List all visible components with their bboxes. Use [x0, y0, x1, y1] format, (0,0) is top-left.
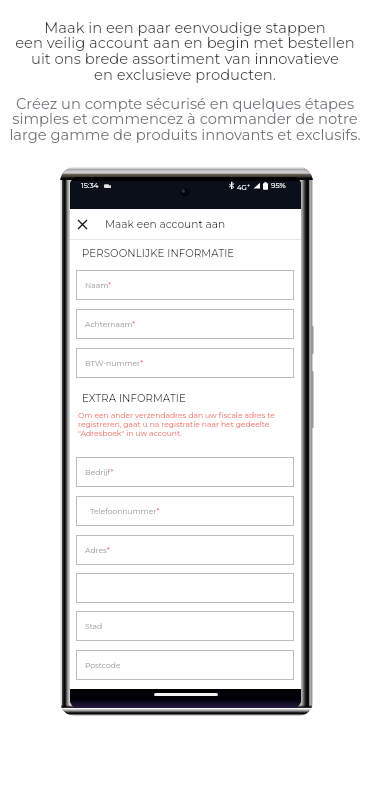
staticText: Créez un compte sécurisé en quelques éta…	[9, 95, 361, 144]
staticText: 15:34	[81, 181, 99, 190]
staticText: Naam*	[85, 281, 111, 290]
button[interactable]: Stad	[76, 611, 294, 641]
staticText: Telefoonnummer*	[90, 507, 160, 516]
staticText: EXTRA INFORMATIE	[82, 392, 186, 404]
staticText: Bedrijf*	[85, 468, 114, 477]
staticText: Maak een account aan	[105, 218, 226, 231]
button[interactable]: Achternaam*	[76, 309, 294, 339]
staticText: BTW-nummer*	[85, 359, 144, 368]
staticText: 95%	[271, 181, 286, 190]
staticText: Postcode	[85, 661, 121, 670]
staticText: +	[247, 182, 251, 189]
button[interactable]: Close	[70, 212, 95, 237]
button[interactable]: Naam*	[76, 270, 294, 300]
button[interactable]: Postcode	[76, 650, 294, 680]
button[interactable]	[76, 573, 294, 603]
staticText: Stad	[85, 622, 103, 631]
button[interactable]: Telefoonnummer*	[76, 496, 294, 526]
staticText: 4G	[237, 183, 247, 191]
staticText: Adres*	[85, 546, 110, 555]
button[interactable]: BTW-nummer*	[76, 348, 294, 378]
button[interactable]: Home	[154, 693, 218, 696]
button[interactable]: Adres*	[76, 535, 294, 565]
staticText: PERSOONLIJKE INFORMATIE	[82, 247, 235, 259]
staticText: Maak in een paar eenvoudige stappen een …	[15, 19, 355, 84]
staticText: Achternaam*	[85, 320, 136, 329]
staticText: Om een ander verzendadres dan uw fiscale…	[78, 411, 290, 438]
button[interactable]: Bedrijf*	[76, 457, 294, 487]
